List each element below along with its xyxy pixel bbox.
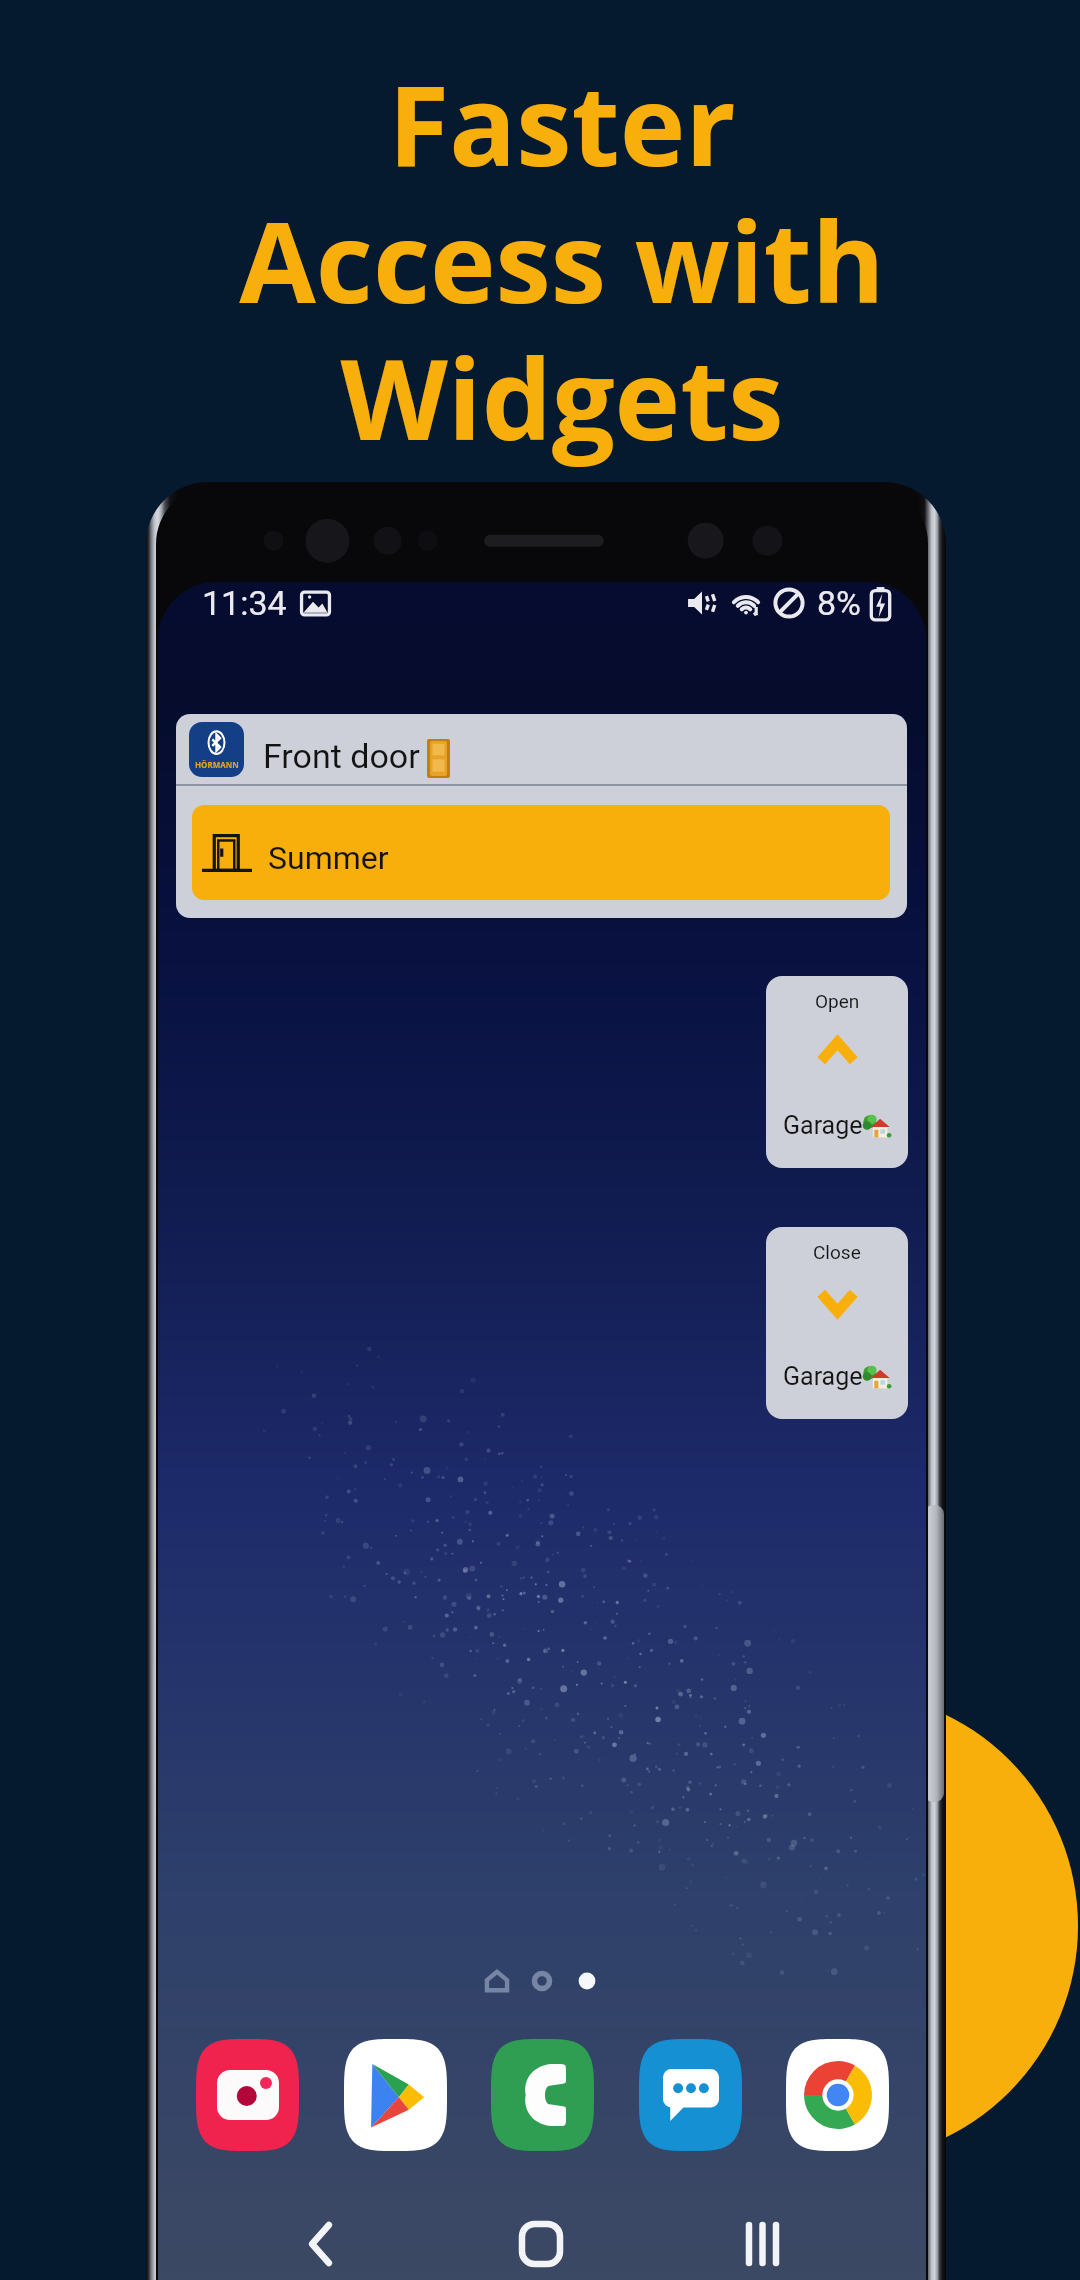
staticText: Summer [268, 839, 389, 877]
button[interactable]: Messages [639, 2039, 742, 2151]
button[interactable]: Recents [727, 2209, 797, 2279]
staticText: Close [813, 1241, 861, 1263]
staticText: 11:34 [202, 583, 287, 623]
staticText: Front door [263, 736, 420, 776]
button[interactable]: Summer [192, 805, 890, 900]
button[interactable]: Page 3, current page [573, 1967, 601, 1995]
button[interactable]: Play Store [344, 2039, 447, 2151]
button[interactable]: Camera [196, 2039, 299, 2151]
staticText: Faster Access with Widgets [239, 47, 885, 472]
button[interactable]: Back [285, 2209, 355, 2279]
button[interactable]: Chrome [786, 2039, 889, 2151]
button[interactable]: Home screen [483, 1967, 511, 1995]
button[interactable]: HÖRMANN [176, 714, 907, 918]
staticText: 8% [817, 583, 862, 623]
button[interactable]: Close [766, 1227, 908, 1419]
button[interactable]: Page 2 [528, 1967, 556, 1995]
button[interactable]: Phone [491, 2039, 594, 2151]
staticText: Garage [783, 1111, 863, 1140]
staticText: HÖRMANN [195, 759, 239, 770]
staticText: Garage [783, 1362, 863, 1391]
button[interactable]: Home [506, 2209, 576, 2279]
staticText: Open [815, 990, 860, 1012]
button[interactable]: Open [766, 976, 908, 1168]
